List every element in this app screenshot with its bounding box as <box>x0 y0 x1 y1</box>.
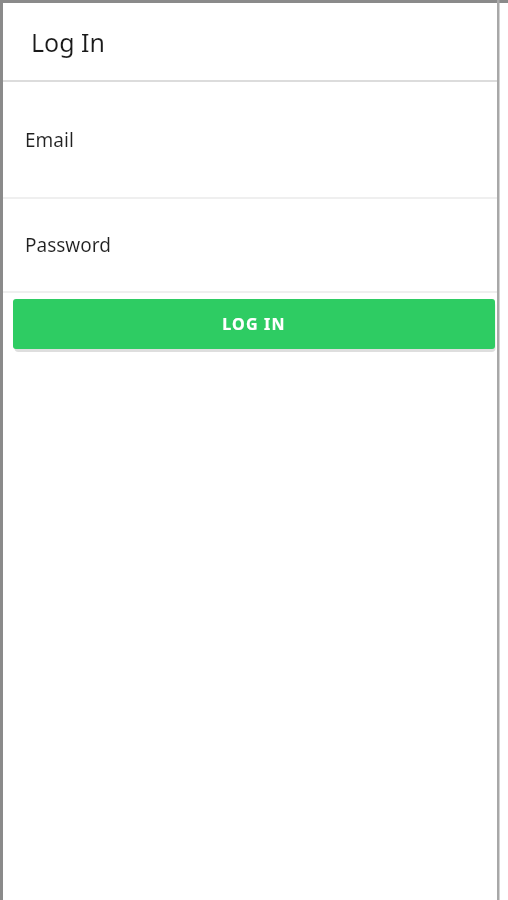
staticText: LOG IN <box>222 313 286 335</box>
button[interactable]: Password <box>3 199 497 291</box>
staticText: Password <box>25 232 111 258</box>
button[interactable]: Email <box>3 82 497 197</box>
staticText: Log In <box>31 25 106 59</box>
staticText: Email <box>25 127 74 153</box>
button[interactable]: LOG IN <box>13 299 495 349</box>
